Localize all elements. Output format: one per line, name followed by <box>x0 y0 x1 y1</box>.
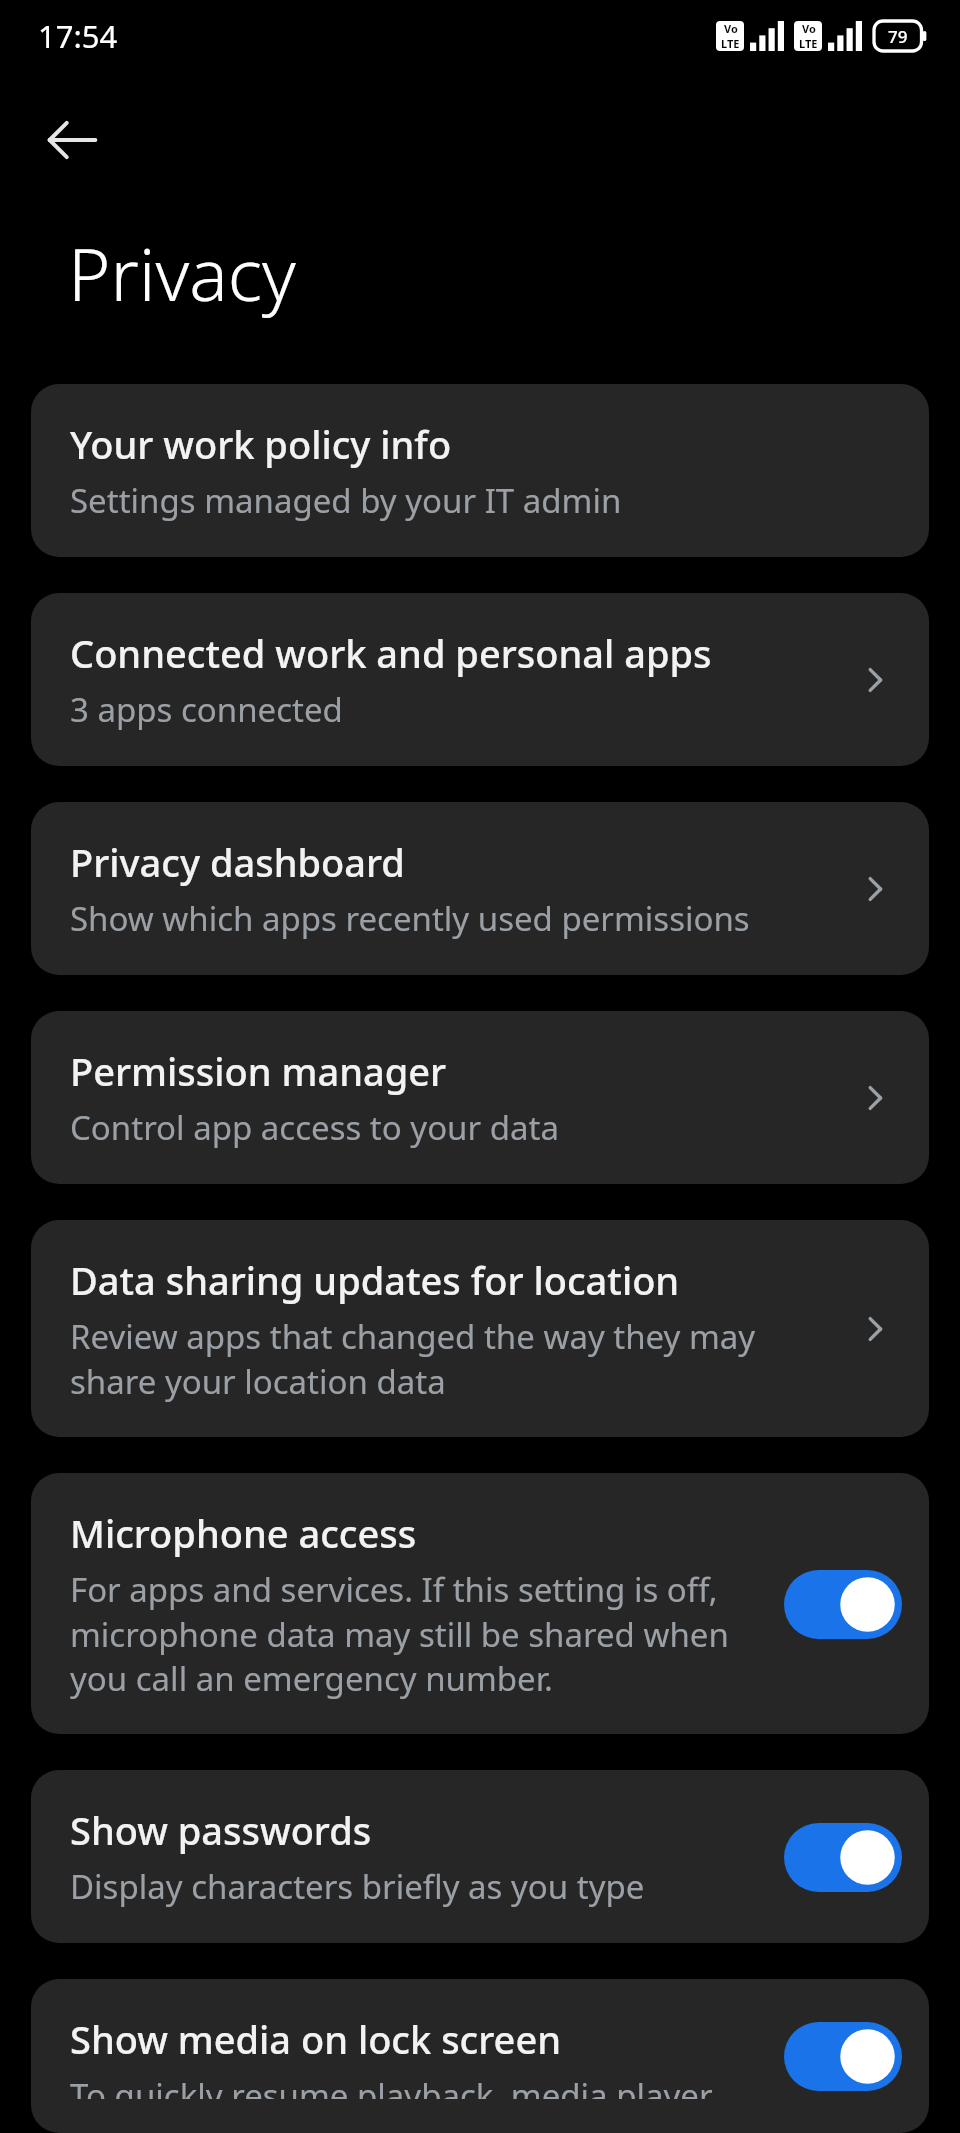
staticText: Show which apps recently used permission… <box>70 896 750 941</box>
button[interactable]: Toggle Show passwords <box>783 1821 903 1893</box>
button[interactable]: Microphone access <box>31 1473 929 1734</box>
button[interactable]: Connected work and personal apps <box>31 593 929 766</box>
staticText: Your work policy info <box>70 418 452 470</box>
staticText: Control app access to your data <box>70 1105 559 1150</box>
staticText: 17:54 <box>38 15 118 57</box>
staticText: 3 apps connected <box>70 687 343 732</box>
button[interactable]: Privacy dashboard <box>31 802 929 975</box>
staticText: Display characters briefly as you type <box>70 1864 645 1909</box>
staticText: Connected work and personal apps <box>70 627 712 679</box>
button[interactable]: Back <box>26 94 118 186</box>
staticText: LTE <box>721 36 740 51</box>
staticText: Privacy dashboard <box>70 836 405 888</box>
staticText: Show passwords <box>70 1804 372 1856</box>
staticText: Settings managed by your IT admin <box>70 478 622 523</box>
button[interactable]: Your work policy info <box>31 384 929 557</box>
staticText: Privacy <box>68 224 296 322</box>
staticText: 79 <box>888 25 908 48</box>
button[interactable]: Show passwords <box>31 1770 929 1943</box>
staticText: Vo <box>724 21 738 36</box>
staticText: Review apps that changed the way they ma… <box>70 1314 837 1403</box>
staticText: To quickly resume playback, media player… <box>70 2073 769 2099</box>
button[interactable]: Permission manager <box>31 1011 929 1184</box>
staticText: Vo <box>802 21 816 36</box>
staticText: LTE <box>799 36 818 51</box>
staticText: For apps and services. If this setting i… <box>70 1567 769 1700</box>
staticText: Microphone access <box>70 1507 417 1559</box>
button[interactable]: Toggle Microphone access <box>783 1568 903 1640</box>
staticText: Show media on lock screen <box>70 2013 562 2065</box>
staticText: Permission manager <box>70 1045 447 1097</box>
button[interactable]: Show media on lock screen <box>31 1979 929 2133</box>
button[interactable]: Toggle Show media on lock screen <box>783 2020 903 2092</box>
button[interactable]: Data sharing updates for location <box>31 1220 929 1437</box>
staticText: Data sharing updates for location <box>70 1254 680 1306</box>
